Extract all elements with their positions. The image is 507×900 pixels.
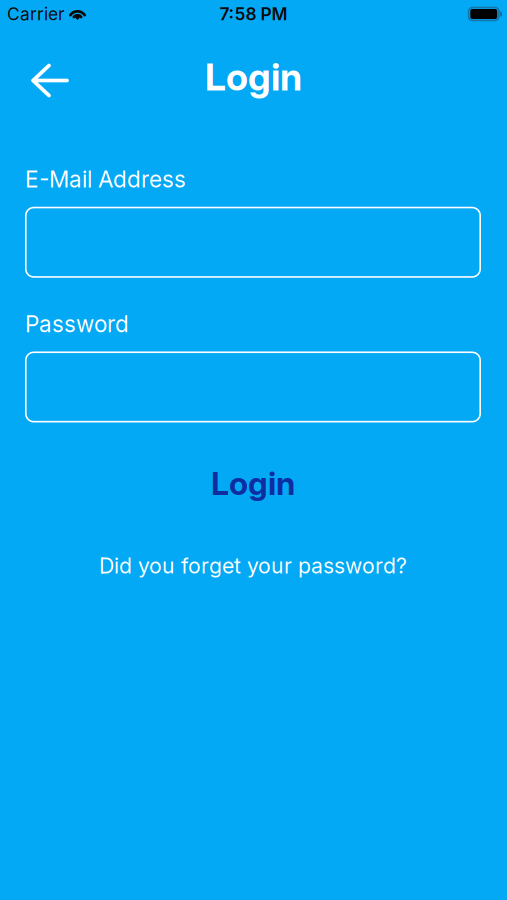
button[interactable]: Back (0, 56, 69, 97)
staticText: Carrier (7, 4, 65, 24)
staticText: 7:58 PM (219, 4, 287, 24)
button[interactable]: Login (211, 464, 295, 502)
staticText: Did you forget your password? (99, 553, 407, 578)
staticText: Login (211, 464, 295, 502)
staticText: E-Mail Address (25, 166, 186, 193)
staticText: Password (25, 311, 129, 337)
staticText: Login (205, 55, 302, 99)
button[interactable]: Did you forget your password? (99, 553, 407, 578)
